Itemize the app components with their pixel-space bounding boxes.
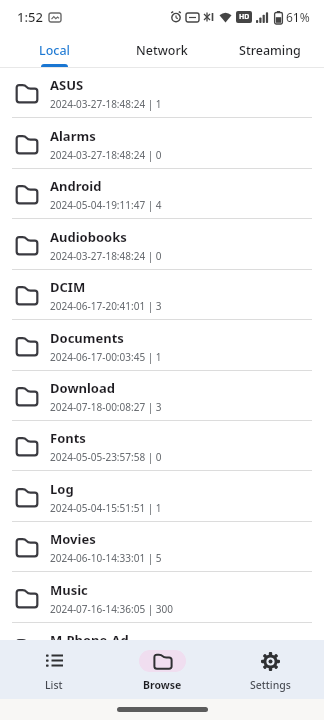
staticText: 2024-03-27-18:48:24 | 0 xyxy=(50,249,162,263)
staticText: Local xyxy=(39,42,70,59)
button[interactable]: Fonts xyxy=(0,421,324,471)
button[interactable]: List xyxy=(0,640,108,699)
button[interactable]: Browse xyxy=(108,640,216,699)
staticText: 2024-06-17-00:03:45 | 1 xyxy=(50,350,162,364)
staticText: 2024-06-17-20:41:01 | 3 xyxy=(50,299,162,313)
button[interactable]: Download xyxy=(0,371,324,421)
staticText: 2024-07-16-14:36:05 | 300 xyxy=(50,602,173,616)
staticText: HD xyxy=(239,12,250,22)
staticText: 2024-06-10-14:33:01 | 5 xyxy=(50,551,162,565)
staticText: 2024-05-04-19:11:47 | 4 xyxy=(50,198,162,212)
staticText: Audiobooks xyxy=(50,228,127,246)
staticText: 2024-07-18-00:08:27 | 3 xyxy=(50,400,162,414)
button[interactable]: Log xyxy=(0,471,324,522)
button[interactable]: ASUS xyxy=(0,68,324,118)
button[interactable]: Android xyxy=(0,169,324,219)
button[interactable]: Documents xyxy=(0,320,324,371)
button[interactable]: Streaming xyxy=(216,34,324,67)
staticText: ASUS xyxy=(50,76,84,94)
staticText: Music xyxy=(50,581,88,599)
staticText: 2024-03-27-18:48:24 | 1 xyxy=(50,97,162,111)
staticText: 1:52 xyxy=(17,8,43,26)
staticText: Documents xyxy=(50,329,124,347)
button[interactable]: Network xyxy=(108,34,216,67)
button[interactable]: Local xyxy=(0,34,108,67)
staticText: Download xyxy=(50,379,115,397)
staticText: Network xyxy=(136,42,188,59)
button[interactable]: Music xyxy=(0,572,324,623)
button[interactable]: M-Phone-Ad xyxy=(0,623,324,640)
staticText: List xyxy=(45,678,63,692)
button[interactable]: Audiobooks xyxy=(0,219,324,270)
staticText: Alarms xyxy=(50,127,96,145)
staticText: Log xyxy=(50,480,74,498)
staticText: 2024-05-04-15:51:51 | 1 xyxy=(50,501,162,515)
staticText: Movies xyxy=(50,530,96,548)
staticText: M-Phone-Ad xyxy=(50,631,129,640)
staticText: Browse xyxy=(143,678,182,692)
staticText: Android xyxy=(50,177,102,195)
staticText: 2024-05-05-23:57:58 | 0 xyxy=(50,450,162,464)
staticText: Settings xyxy=(250,678,291,692)
staticText: 61% xyxy=(286,9,310,25)
staticText: DCIM xyxy=(50,278,86,296)
button[interactable]: Movies xyxy=(0,522,324,572)
staticText: Streaming xyxy=(239,42,301,59)
staticText: 2024-03-27-18:48:24 | 0 xyxy=(50,148,162,162)
button[interactable]: Alarms xyxy=(0,118,324,169)
button[interactable]: DCIM xyxy=(0,270,324,320)
button[interactable]: Settings xyxy=(216,640,324,699)
staticText: Fonts xyxy=(50,429,86,447)
